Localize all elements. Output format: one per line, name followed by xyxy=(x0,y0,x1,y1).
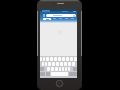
button[interactable]: Key xyxy=(65,67,67,71)
button[interactable]: Key xyxy=(40,57,42,61)
button[interactable]: Key xyxy=(62,57,65,61)
button[interactable]: Key xyxy=(55,67,58,71)
button[interactable]: Key xyxy=(58,57,61,61)
button[interactable]: Key xyxy=(68,67,70,71)
button[interactable]: Key xyxy=(60,62,63,66)
button[interactable]: Key xyxy=(74,57,77,61)
button[interactable]: Key xyxy=(48,62,51,66)
button[interactable]: Search or type URL xyxy=(46,14,76,17)
button[interactable]: Key xyxy=(59,67,61,71)
button[interactable]: Key xyxy=(52,62,55,66)
button[interactable]: Key xyxy=(43,57,45,61)
button[interactable]: Key xyxy=(56,62,59,66)
button[interactable]: Key xyxy=(42,62,44,66)
button[interactable]: Key xyxy=(70,57,73,61)
button[interactable]: Key xyxy=(66,57,69,61)
button[interactable]: Key xyxy=(50,57,53,61)
button[interactable]: Tab xyxy=(42,10,50,12)
button[interactable]: Key xyxy=(64,62,67,66)
button[interactable]: Key xyxy=(46,57,49,61)
button[interactable]: Search xyxy=(43,18,51,20)
button[interactable]: New tab xyxy=(73,11,76,12)
button[interactable]: Key xyxy=(68,62,71,66)
button[interactable]: Key xyxy=(62,67,64,71)
button[interactable]: Key xyxy=(47,67,50,71)
button[interactable]: Key xyxy=(45,62,47,66)
button[interactable]: Key xyxy=(54,57,57,61)
button[interactable]: Key xyxy=(72,62,75,66)
button[interactable]: Key xyxy=(51,67,54,71)
